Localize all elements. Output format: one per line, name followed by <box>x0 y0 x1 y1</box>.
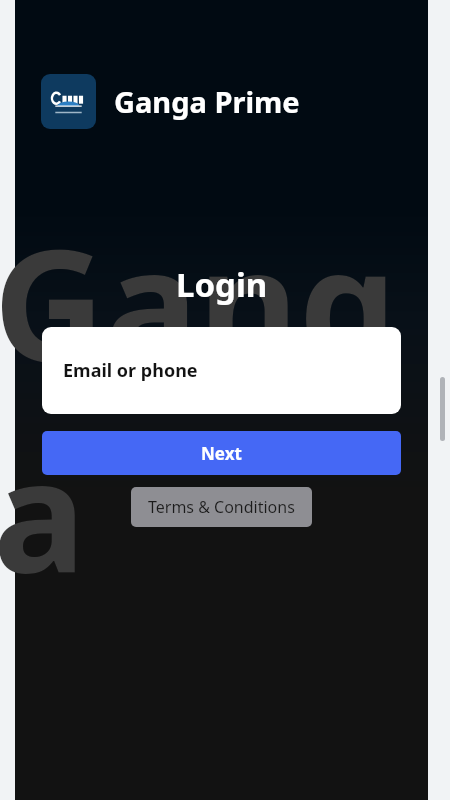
button[interactable]: Next <box>42 431 401 475</box>
staticText: Login <box>176 262 268 307</box>
staticText: Ganga Prime <box>114 82 300 121</box>
staticText: Next <box>201 442 242 465</box>
button[interactable]: Email or phone <box>42 327 401 414</box>
button[interactable]: Terms & Conditions <box>131 487 312 527</box>
staticText: Email or phone <box>63 358 198 383</box>
staticText: Ganga <box>0 195 406 617</box>
staticText: Terms & Conditions <box>148 496 295 518</box>
other: Ganga Prime logo <box>41 74 96 129</box>
